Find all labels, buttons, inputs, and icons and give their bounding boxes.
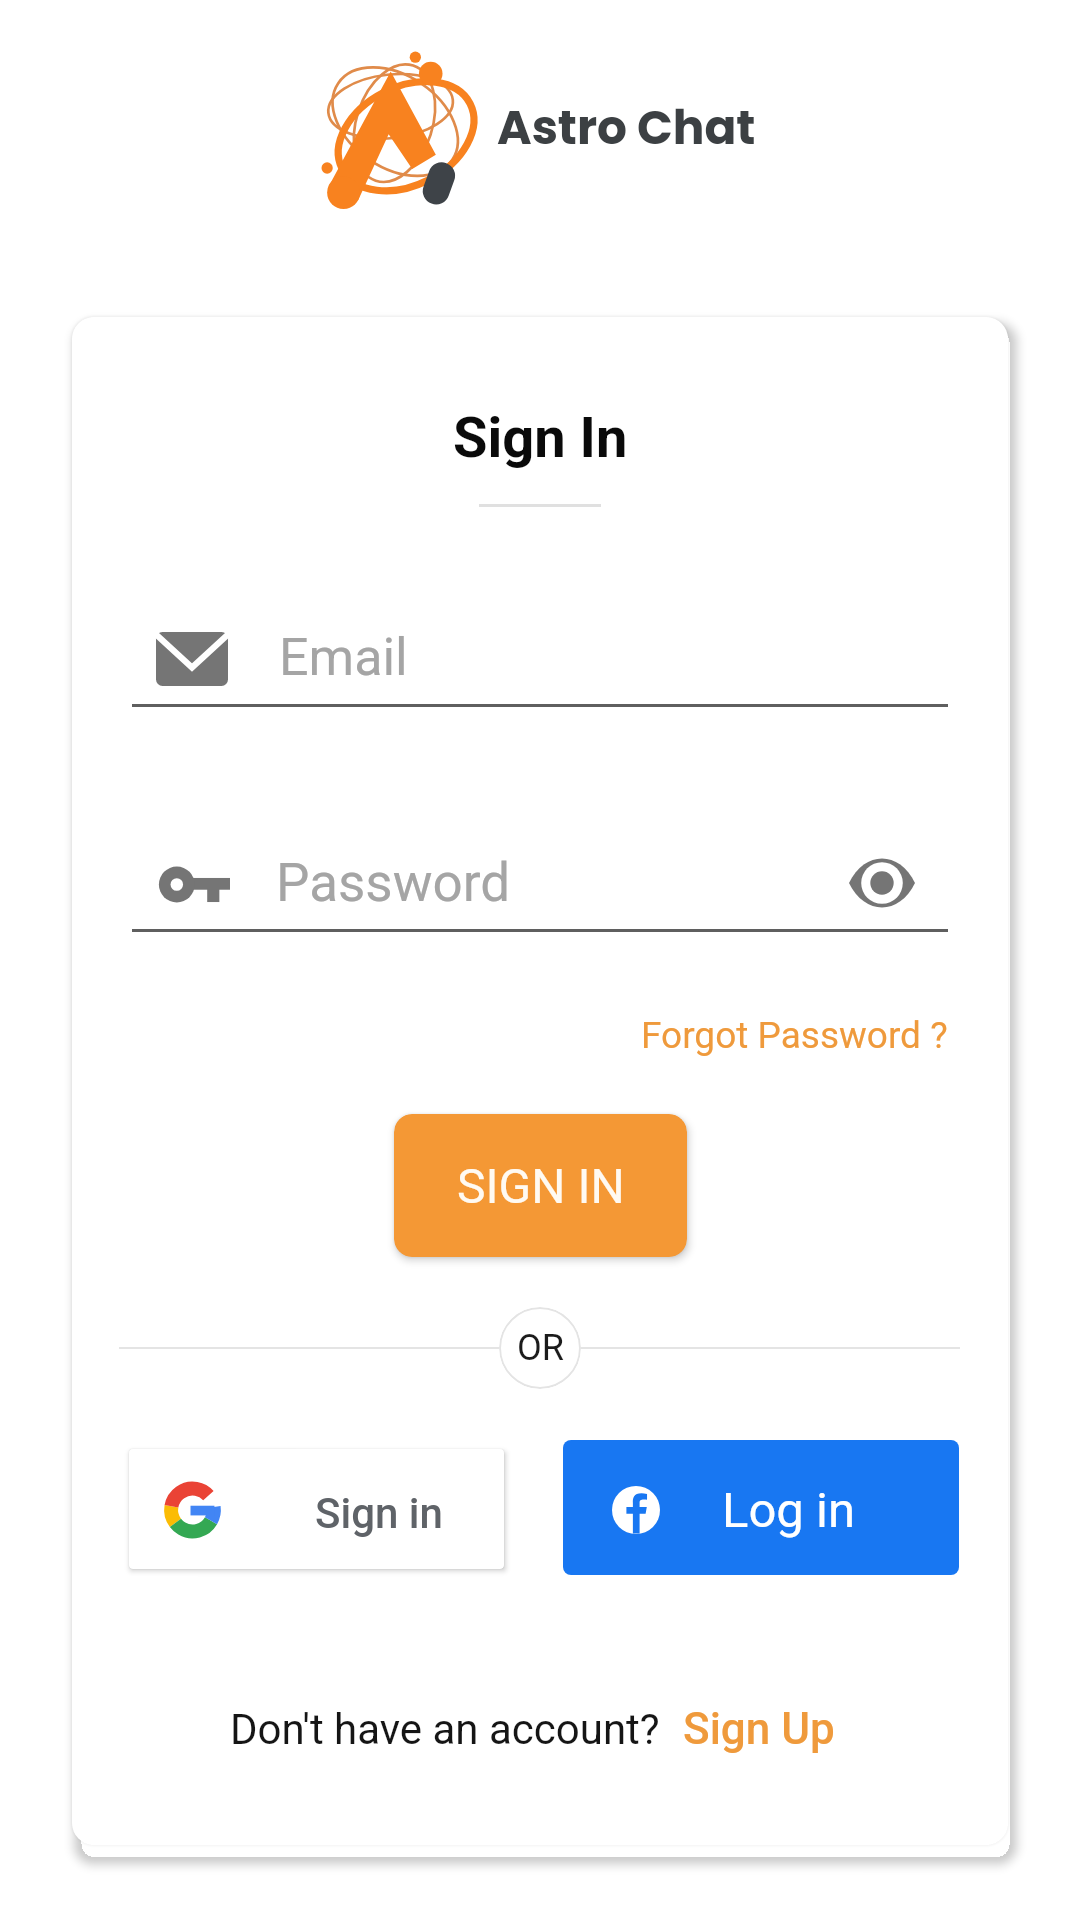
staticText: Log in bbox=[722, 1482, 855, 1539]
staticText: Sign Up bbox=[683, 1703, 835, 1755]
button[interactable]: Password bbox=[132, 838, 948, 932]
staticText: SIGN IN bbox=[457, 1158, 625, 1214]
staticText: Astro Chat bbox=[497, 95, 756, 161]
staticText: Forgot Password ? bbox=[641, 1014, 948, 1057]
staticText: Password bbox=[276, 852, 511, 914]
button[interactable]: Email bbox=[132, 613, 948, 707]
button[interactable]: Forgot Password ? bbox=[641, 1014, 948, 1057]
button[interactable]: Log in bbox=[563, 1440, 959, 1575]
button[interactable]: Sign Up bbox=[683, 1703, 835, 1755]
button[interactable]: Sign in bbox=[129, 1449, 504, 1569]
button[interactable]: Show password bbox=[840, 843, 924, 923]
staticText: Email bbox=[279, 627, 408, 688]
staticText: Sign In bbox=[453, 405, 628, 471]
staticText: OR bbox=[517, 1327, 564, 1369]
staticText: Sign in bbox=[315, 1489, 443, 1538]
staticText: Don't have an account? bbox=[230, 1705, 660, 1754]
button[interactable]: SIGN IN bbox=[394, 1114, 687, 1257]
